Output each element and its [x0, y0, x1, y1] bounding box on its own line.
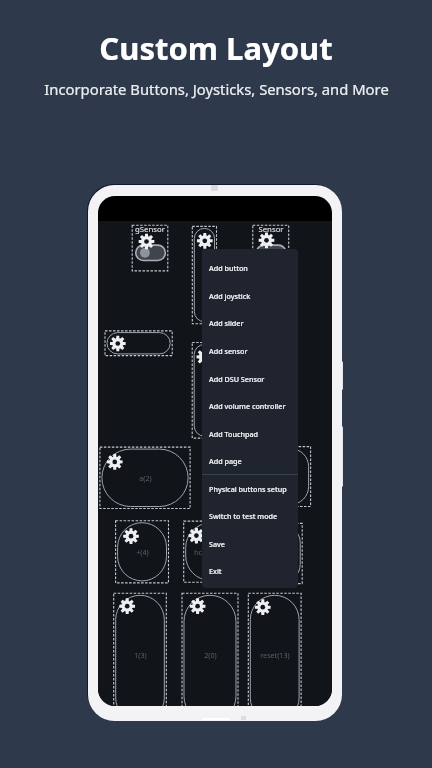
button[interactable]: Save [202, 530, 298, 558]
staticText: 2(0) [204, 650, 217, 660]
staticText: reset(13) [260, 650, 290, 660]
staticText: Add button [209, 263, 248, 273]
staticText: +(4) [136, 547, 149, 557]
button[interactable]: Switch to test mode [202, 502, 298, 530]
staticText: a(2) [139, 473, 152, 483]
button[interactable]: Add sensor [202, 337, 298, 365]
button[interactable]: Add volume controller [202, 392, 298, 420]
staticText: Custom Layout [99, 27, 333, 69]
staticText: Add DSU Sensor [209, 374, 265, 384]
staticText: 1(3) [134, 650, 147, 660]
staticText: Incorporate Buttons, Joysticks, Sensors,… [44, 79, 389, 99]
button[interactable]: Physical buttons setup [202, 475, 298, 503]
button[interactable]: Add DSU Sensor [202, 365, 298, 393]
button[interactable]: Add page [202, 447, 298, 475]
staticText: Switch to test mode [209, 511, 278, 521]
button[interactable]: Add Touchpad [202, 420, 298, 448]
staticText: Save [209, 539, 225, 549]
staticText: Add volume controller [209, 401, 286, 411]
staticText: Add joystick [209, 291, 251, 301]
staticText: Add sensor [209, 346, 248, 356]
button[interactable]: Add button [202, 254, 298, 282]
staticText: gSensor [135, 224, 165, 235]
staticText: Sensor [258, 224, 284, 235]
staticText: Exit [209, 566, 222, 576]
staticText: Add slider [209, 318, 244, 328]
button[interactable]: Exit [202, 557, 298, 585]
staticText: hc [194, 547, 202, 557]
staticText: Add page [209, 456, 242, 466]
staticText: Physical buttons setup [209, 484, 287, 494]
button[interactable]: Add joystick [202, 282, 298, 310]
button[interactable]: Add slider [202, 309, 298, 337]
staticText: Add Touchpad [209, 429, 258, 439]
